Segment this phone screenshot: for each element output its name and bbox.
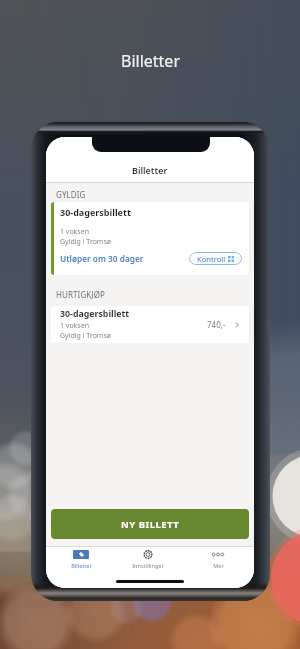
staticText: Utløper om 30 dager (60, 253, 144, 264)
staticText: Billetter (132, 164, 168, 176)
button[interactable]: Billetter (50, 547, 112, 575)
other: Innstillinger (143, 550, 153, 559)
button[interactable]: 30-dagersbillett (51, 202, 249, 275)
button[interactable]: Kontroll (189, 252, 242, 265)
staticText: GYLDIG (56, 189, 86, 200)
staticText: Billetter (121, 50, 180, 72)
button[interactable]: Mer (187, 547, 249, 575)
staticText: Innstillinger (132, 562, 164, 570)
staticText: 30-dagersbillett (60, 206, 131, 218)
button[interactable]: Innstillinger (117, 547, 179, 575)
staticText: Gyldig i Tromsø (60, 237, 111, 247)
staticText: Billetter (71, 562, 92, 570)
staticText: Gyldig i Tromsø (60, 331, 111, 341)
other: Billetter (73, 550, 89, 559)
button[interactable]: 30-dagersbillett (51, 306, 249, 343)
staticText: Kontroll (197, 254, 226, 264)
button[interactable]: NY BILLETT (51, 509, 249, 539)
staticText: 30-dagersbillett (60, 308, 130, 320)
staticText: HURTIGKJØP (56, 289, 105, 300)
staticText: 1 voksen (60, 227, 89, 237)
staticText: 740,- (207, 319, 226, 330)
staticText: Mer (213, 562, 224, 570)
staticText: 1 voksen (60, 321, 89, 331)
staticText: NY BILLETT (121, 518, 180, 531)
other: Mer (211, 550, 225, 559)
